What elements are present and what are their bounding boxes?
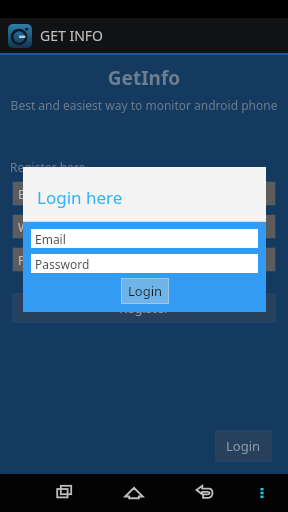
button[interactable]: More options [247,478,277,508]
staticText: Login [128,282,163,300]
staticText: Register [119,299,170,317]
button[interactable]: Password [12,247,276,272]
button[interactable]: Back [185,474,223,512]
staticText: GetInfo [0,65,288,91]
button[interactable]: Login [121,278,169,304]
button[interactable]: Email [12,181,276,206]
staticText: Register here [10,159,86,175]
staticText: Email [18,186,49,202]
staticText: Login [226,437,261,455]
button[interactable]: Password [31,254,258,273]
staticText: Login here [37,186,123,209]
button[interactable]: Home [115,474,153,512]
staticText: GET INFO [40,26,103,45]
button[interactable]: Register [12,293,276,323]
button[interactable]: Email [31,229,258,248]
button[interactable]: Website [12,214,276,239]
staticText: Password [35,256,90,272]
staticText: Website [18,219,64,235]
button[interactable]: Recent apps [45,474,83,512]
staticText: Best and easiest way to monitor android … [6,97,282,113]
staticText: Password [18,252,73,268]
button[interactable]: Login [215,430,272,462]
staticText: Email [35,231,66,247]
